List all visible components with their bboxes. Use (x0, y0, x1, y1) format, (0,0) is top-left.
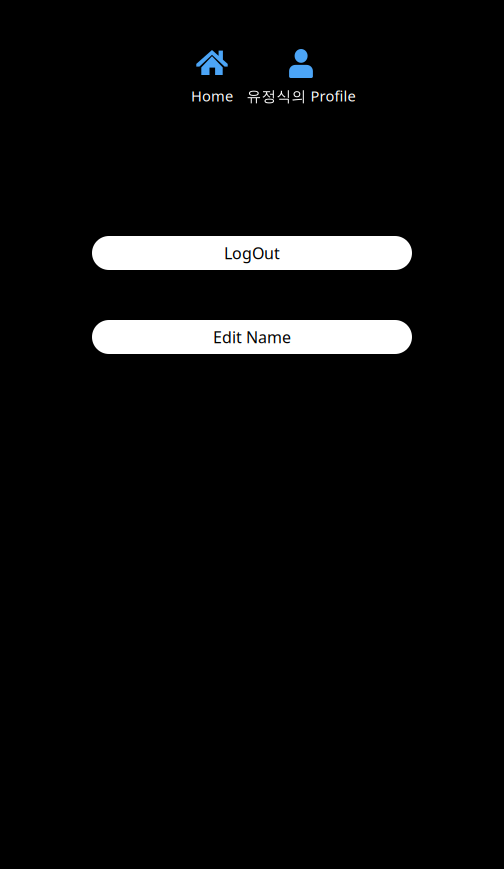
staticText: LogOut (224, 242, 280, 264)
button[interactable]: 유정식의 Profile (241, 49, 361, 105)
button[interactable]: Home (181, 50, 243, 105)
button[interactable]: Edit Name (92, 320, 412, 354)
staticText: Edit Name (213, 326, 291, 348)
staticText: 유정식의 Profile (246, 86, 355, 105)
staticText: Home (191, 86, 233, 105)
button[interactable]: LogOut (92, 236, 412, 270)
